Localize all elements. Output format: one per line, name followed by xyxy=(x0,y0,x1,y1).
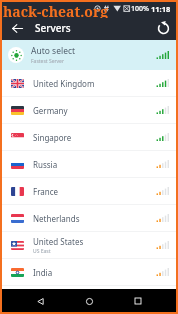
staticText: Servers xyxy=(35,21,71,35)
button[interactable]: Auto select xyxy=(2,40,176,70)
staticText: Auto select xyxy=(31,45,76,57)
button[interactable]: United States xyxy=(2,232,176,259)
button[interactable]: France xyxy=(2,178,176,205)
button[interactable]: Singapore xyxy=(2,124,176,151)
button[interactable]: Recent apps xyxy=(127,290,149,312)
button[interactable]: Back xyxy=(5,16,29,40)
staticText: United States xyxy=(33,236,84,247)
button[interactable]: Netherlands xyxy=(2,205,176,232)
staticText: hack-cheat.org xyxy=(3,2,109,18)
staticText: India xyxy=(33,267,53,278)
button[interactable]: India xyxy=(2,259,176,286)
staticText: France xyxy=(33,186,59,197)
staticText: 11:18 xyxy=(151,4,171,14)
button[interactable]: Germany xyxy=(2,97,176,124)
button[interactable]: United Kingdom xyxy=(2,70,176,97)
button[interactable]: Russia xyxy=(2,151,176,178)
staticText: Netherlands xyxy=(33,213,80,224)
staticText: US East xyxy=(33,248,51,255)
button[interactable]: Refresh xyxy=(151,16,175,40)
staticText: Fastest Server xyxy=(31,58,64,65)
button[interactable]: Home xyxy=(78,290,100,312)
staticText: 100% xyxy=(131,4,149,14)
staticText: Germany xyxy=(33,105,68,116)
staticText: Russia xyxy=(33,159,58,170)
button[interactable]: Back xyxy=(29,290,51,312)
staticText: Singapore xyxy=(33,132,72,143)
staticText: United Kingdom xyxy=(33,78,95,89)
